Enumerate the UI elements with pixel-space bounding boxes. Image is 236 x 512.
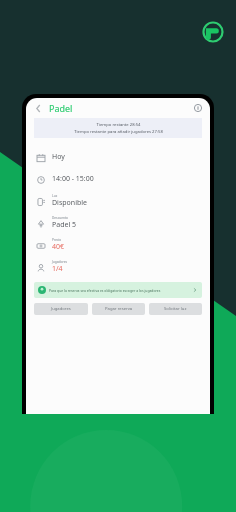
staticText: Jugadores (52, 260, 68, 264)
button[interactable]: Info (192, 102, 204, 114)
staticText: 40€ (52, 242, 65, 252)
staticText: Jugadores (51, 306, 71, 312)
staticText: Disponible (52, 198, 87, 208)
button[interactable]: Para que la reserva sea efectiva es obli… (34, 282, 202, 298)
button[interactable]: Descuento (36, 212, 200, 234)
staticText: 1/4 (52, 264, 63, 274)
button[interactable]: Solicitar luz (149, 303, 202, 315)
staticText: Descuento (52, 216, 68, 220)
staticText: Padel (49, 102, 73, 114)
button[interactable]: Jugadores (34, 303, 88, 315)
button[interactable]: Hoy (36, 146, 200, 168)
staticText: Solicitar luz (164, 306, 187, 312)
staticText: Para que la reserva sea efectiva es obli… (49, 288, 192, 293)
staticText: 14:00 - 15:00 (52, 174, 94, 184)
button[interactable]: Tiempo restante 28:54 (34, 118, 202, 138)
button[interactable]: Pagar reserva (92, 303, 145, 315)
staticText: Tiempo restante 28:54 (96, 122, 141, 128)
button[interactable]: Back (32, 102, 44, 114)
staticText: Luz (52, 194, 58, 198)
button[interactable]: Precio (36, 234, 200, 256)
button[interactable]: 14:00 - 15:00 (36, 168, 200, 190)
button[interactable]: Jugadores (36, 256, 200, 278)
staticText: Hoy (52, 152, 65, 162)
staticText: Padel 5 (52, 220, 77, 230)
button[interactable]: Luz (36, 190, 200, 212)
staticText: Pagar reserva (105, 306, 133, 312)
button[interactable]: Logo (202, 21, 224, 43)
staticText: Precio (52, 238, 62, 242)
staticText: Tiempo restante para añadir jugadores 27… (74, 129, 163, 135)
